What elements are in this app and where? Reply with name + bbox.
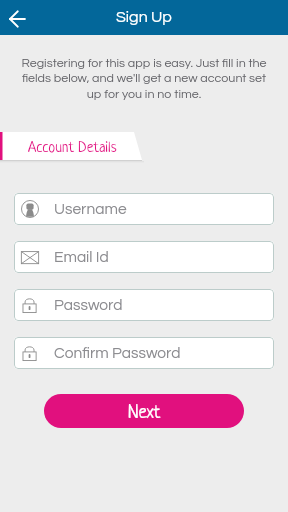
staticText: Password bbox=[54, 297, 123, 313]
button[interactable]: Username bbox=[14, 193, 274, 225]
button[interactable]: Password bbox=[14, 289, 274, 321]
button[interactable]: Back bbox=[0, 1, 34, 35]
staticText: Registering for this app is easy. Just f… bbox=[0, 57, 288, 101]
staticText: Next bbox=[128, 403, 161, 423]
staticText: Account Details bbox=[28, 140, 117, 156]
staticText: Confirm Password bbox=[54, 345, 181, 361]
staticText: Email Id bbox=[54, 249, 109, 265]
staticText: Username bbox=[54, 201, 127, 217]
button[interactable]: Email Id bbox=[14, 241, 274, 273]
button[interactable]: Next bbox=[44, 394, 244, 428]
staticText: Sign Up bbox=[116, 9, 172, 25]
button[interactable]: Confirm Password bbox=[14, 337, 274, 369]
